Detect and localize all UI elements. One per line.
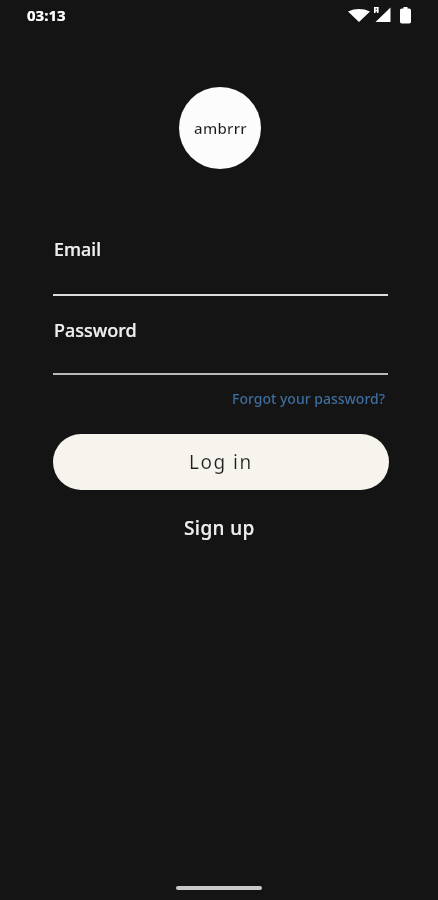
staticText: 03:13 — [27, 5, 66, 25]
button[interactable]: Sign up — [159, 508, 279, 548]
staticText: Sign up — [184, 515, 255, 541]
staticText: ambrrr — [194, 118, 247, 138]
staticText: Password — [54, 318, 137, 343]
staticText: Forgot your password? — [232, 389, 385, 408]
button[interactable]: Log in — [53, 434, 389, 490]
button[interactable]: Email — [53, 232, 388, 296]
staticText: Log in — [189, 449, 253, 475]
button[interactable]: Forgot your password? — [225, 386, 391, 410]
button[interactable]: Password — [53, 313, 388, 375]
staticText: Email — [54, 237, 102, 262]
